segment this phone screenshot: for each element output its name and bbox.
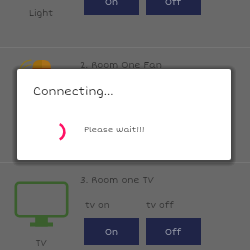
staticText: Fan	[14, 123, 68, 134]
staticText: Light	[14, 8, 68, 19]
staticText: Connecting...	[33, 84, 114, 98]
other: TV	[6, 169, 76, 231]
staticText: On	[105, 227, 118, 237]
button[interactable]: On	[84, 0, 139, 15]
button[interactable]: On	[84, 218, 139, 245]
staticText: On	[105, 0, 118, 7]
button[interactable]: On	[84, 103, 139, 130]
button[interactable]: Off	[146, 0, 201, 15]
staticText: tv on	[85, 200, 110, 210]
staticText: fan on	[85, 85, 117, 95]
button[interactable]: Off	[146, 218, 201, 245]
staticText: Off	[165, 227, 182, 237]
staticText: Off	[165, 0, 182, 7]
staticText: tv off	[146, 200, 174, 210]
other: Fan	[6, 54, 76, 116]
staticText: 2. Room One Fan	[80, 60, 162, 71]
staticText: 3. Room one TV	[80, 175, 154, 186]
staticText: Please wait!!!	[84, 125, 145, 135]
staticText: TV	[14, 238, 68, 249]
